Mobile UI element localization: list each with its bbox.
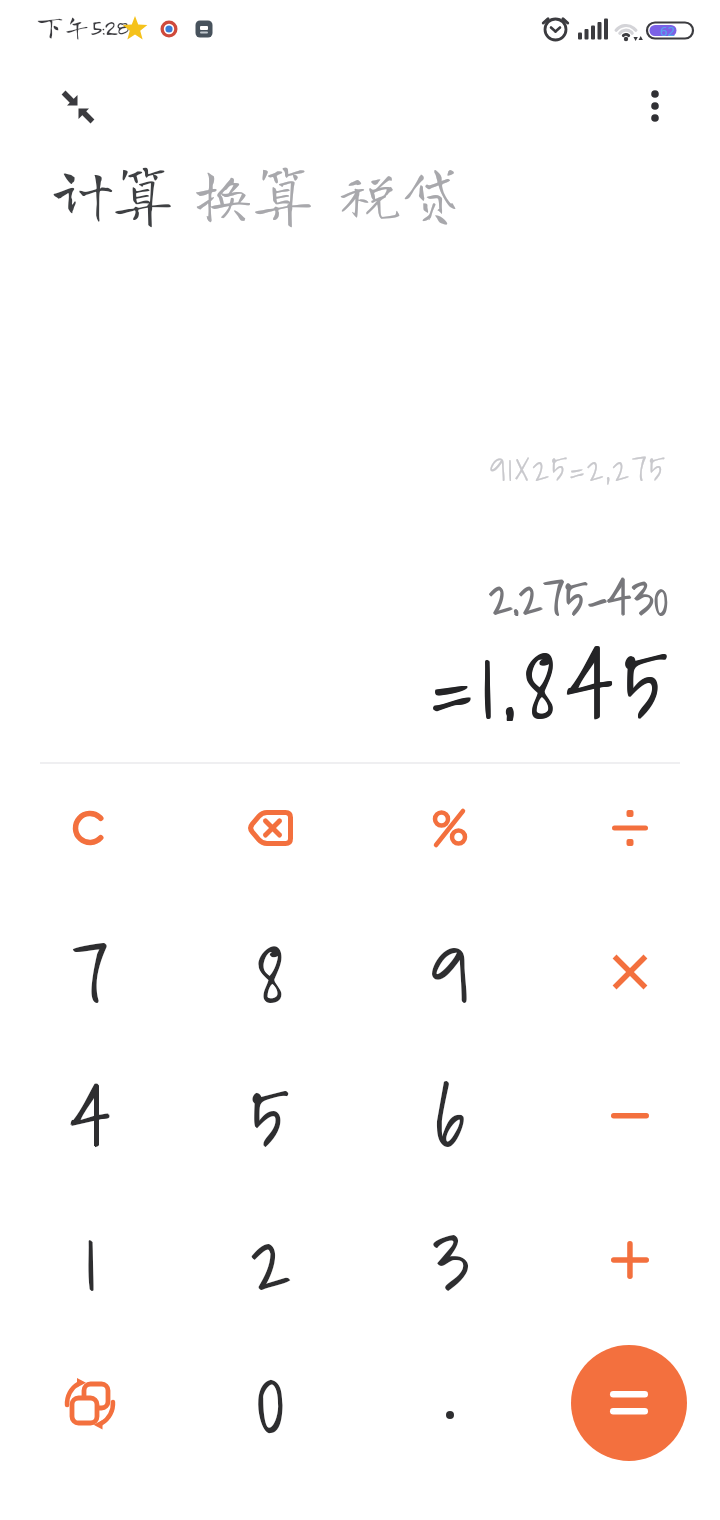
staticText: 7 [73, 910, 110, 1037]
button[interactable] [360, 756, 540, 900]
button[interactable]: 9 [360, 900, 540, 1044]
button[interactable]: 7 [0, 900, 180, 1044]
staticText: 计算 [52, 161, 173, 223]
staticText: 2 [250, 1197, 291, 1324]
staticText: 4 [70, 1053, 110, 1180]
staticText: 8 [258, 910, 285, 1037]
staticText: =1,845 [431, 610, 679, 720]
staticText: 7 [72, 909, 109, 1036]
button[interactable] [360, 1332, 540, 1476]
button[interactable]: 8 [180, 900, 360, 1044]
button[interactable]: 税贷 [339, 161, 460, 223]
staticText: 5 [251, 1053, 289, 1180]
button[interactable]: 5 [180, 1044, 360, 1188]
staticText: 2,275-430 [489, 560, 669, 616]
button[interactable] [0, 756, 180, 900]
button[interactable]: 2 [180, 1188, 360, 1332]
staticText: =1,845 [431, 611, 679, 721]
button[interactable]: 计算 [52, 161, 173, 223]
staticText: =1,845 [432, 611, 680, 721]
staticText: 5 [252, 1054, 290, 1181]
staticText: 2,275-430 [488, 559, 668, 615]
button[interactable] [540, 900, 720, 1044]
staticText: 8 [257, 909, 284, 1036]
staticText: 2 [251, 1198, 292, 1325]
staticText: 3 [432, 1197, 469, 1324]
staticText: 91X25=2,275 [490, 442, 668, 495]
staticText: 下午5:28 [36, 12, 127, 40]
staticText: 6 [435, 1053, 465, 1180]
staticText: 税贷 [339, 161, 460, 223]
button[interactable] [571, 1345, 687, 1461]
button[interactable] [540, 1044, 720, 1188]
button[interactable]: 4 [0, 1044, 180, 1188]
staticText: 1 [87, 1198, 96, 1325]
button[interactable]: 1 [0, 1188, 180, 1332]
button[interactable] [56, 85, 102, 131]
staticText: 9 [431, 909, 469, 1036]
button[interactable] [540, 1188, 720, 1332]
button[interactable]: 0 [180, 1332, 360, 1476]
button[interactable] [0, 1332, 180, 1476]
staticText: 9 [432, 910, 470, 1037]
staticText: =1,845 [432, 610, 680, 720]
staticText: 6 [436, 1054, 466, 1181]
button[interactable] [540, 756, 720, 900]
staticText: 4 [71, 1054, 111, 1181]
button[interactable]: 3 [360, 1188, 540, 1332]
staticText: 换算 [192, 161, 313, 223]
button[interactable] [180, 756, 360, 900]
staticText: 3 [433, 1198, 470, 1325]
staticText: 62 [660, 22, 675, 40]
staticText: 0 [255, 1319, 285, 1463]
staticText: 1 [86, 1197, 95, 1324]
button[interactable]: 换算 [192, 161, 313, 223]
button[interactable]: 6 [360, 1044, 540, 1188]
button[interactable] [633, 84, 677, 128]
staticText: 0 [256, 1320, 286, 1464]
